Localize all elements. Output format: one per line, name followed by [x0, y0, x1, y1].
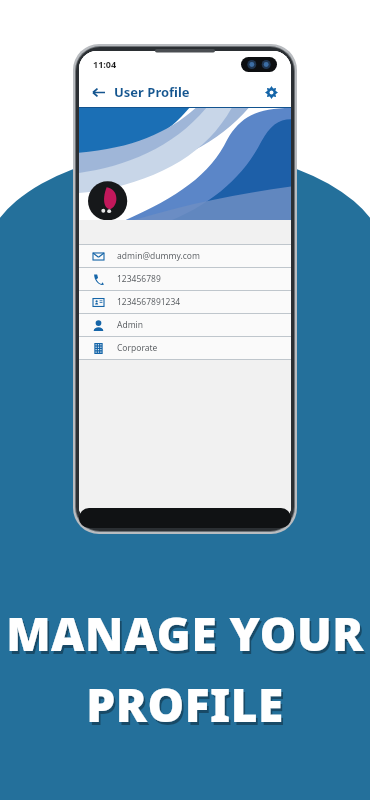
staticText: PROFILE — [88, 676, 286, 739]
staticText: MANAGE YOUR — [6, 602, 364, 665]
staticText: Corporate — [117, 342, 158, 354]
staticText: admin@dummy.com — [117, 250, 200, 262]
staticText: 11:04 — [93, 58, 117, 70]
staticText: Admin — [117, 319, 144, 331]
staticText: PROFILE — [86, 673, 284, 736]
staticText: 123456789 — [117, 273, 161, 285]
staticText: MANAGE YOUR — [8, 605, 366, 668]
staticText: User Profile — [114, 83, 190, 101]
button[interactable]: Settings — [261, 82, 281, 102]
button[interactable]: 123456789 — [79, 268, 291, 290]
button[interactable]: Admin — [79, 314, 291, 336]
button[interactable]: admin@dummy.com — [79, 245, 291, 267]
staticText: 1234567891234 — [117, 296, 181, 308]
button[interactable]: Back — [89, 83, 107, 101]
button[interactable]: 1234567891234 — [79, 291, 291, 313]
button[interactable]: Corporate — [79, 337, 291, 359]
